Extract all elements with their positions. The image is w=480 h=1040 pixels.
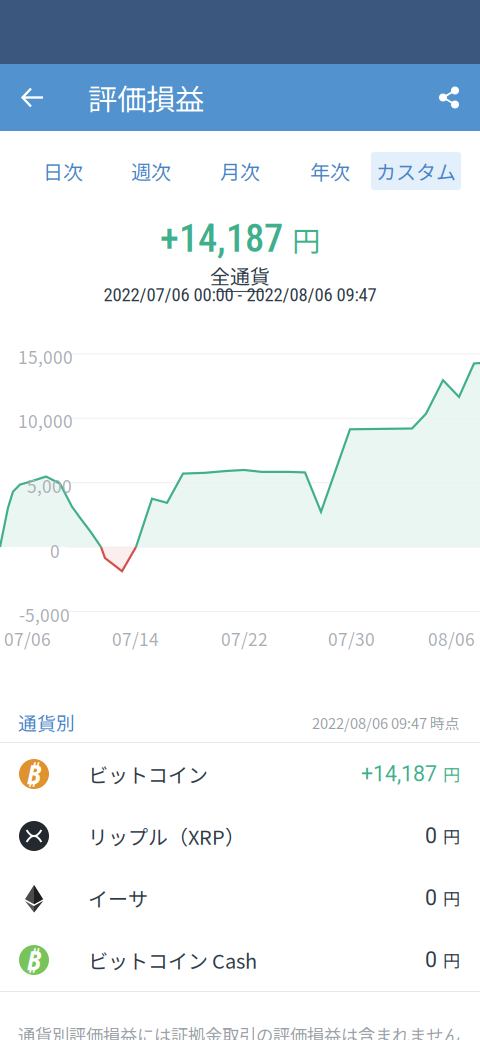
staticText: 0 [425, 885, 437, 910]
staticText: 円 [443, 761, 460, 787]
staticText: ₿ [26, 942, 41, 978]
staticText: 5,000 [27, 473, 72, 498]
button[interactable]: イーサ [0, 867, 480, 929]
staticText: +14,187 [160, 216, 283, 261]
staticText: 週次 [131, 156, 171, 185]
button[interactable]: ₿ [0, 929, 480, 991]
staticText: 円 [443, 885, 460, 911]
staticText: 評価損益 [88, 76, 204, 119]
staticText: 全通貨 [210, 261, 270, 290]
staticText: 通貨別 [18, 709, 75, 736]
staticText: リップル（XRP） [88, 821, 245, 850]
staticText: 円 [443, 947, 460, 973]
staticText: 年次 [310, 156, 350, 185]
staticText: イーサ [88, 883, 148, 912]
staticText: 月次 [220, 156, 260, 185]
button[interactable]: 通貨別 [18, 703, 75, 742]
staticText: 15,000 [18, 344, 73, 369]
staticText: +14,187 [361, 761, 437, 786]
staticText: 0 [50, 538, 60, 563]
button[interactable]: カスタム [371, 152, 461, 190]
button[interactable]: Share [418, 64, 480, 131]
staticText: ビットコイン [88, 759, 208, 788]
button[interactable]: 週次 [113, 152, 189, 190]
staticText: 円 [443, 823, 460, 849]
button[interactable]: リップル（XRP） [0, 805, 480, 867]
staticText: 0 [425, 823, 437, 848]
staticText: ₿ [26, 756, 41, 792]
staticText: 2022/07/06 00:00 - 2022/08/06 09:47 [103, 284, 376, 306]
staticText: 2022/08/06 09:47 時点 [312, 712, 460, 733]
staticText: 日次 [43, 156, 83, 185]
staticText: 通貨別評価損益には証拠金取引の評価損益は含まれません [18, 1022, 460, 1040]
button[interactable]: 全通貨 [0, 261, 480, 292]
button[interactable]: Back [0, 64, 66, 131]
button[interactable]: 日次 [25, 152, 101, 190]
staticText: 円 [292, 219, 320, 260]
staticText: 07/22 [221, 626, 268, 651]
staticText: 0 [425, 947, 437, 972]
staticText: 07/06 [4, 626, 51, 651]
staticText: 10,000 [18, 408, 73, 433]
button[interactable]: 年次 [292, 152, 368, 190]
button[interactable]: ₿ [0, 743, 480, 805]
button[interactable]: 月次 [202, 152, 278, 190]
staticText: 07/14 [112, 626, 159, 651]
staticText: 08/06 [428, 626, 475, 651]
staticText: カスタム [376, 156, 456, 185]
staticText: ビットコイン Cash [88, 945, 257, 974]
staticText: 07/30 [328, 626, 375, 651]
staticText: -5,000 [19, 602, 70, 627]
